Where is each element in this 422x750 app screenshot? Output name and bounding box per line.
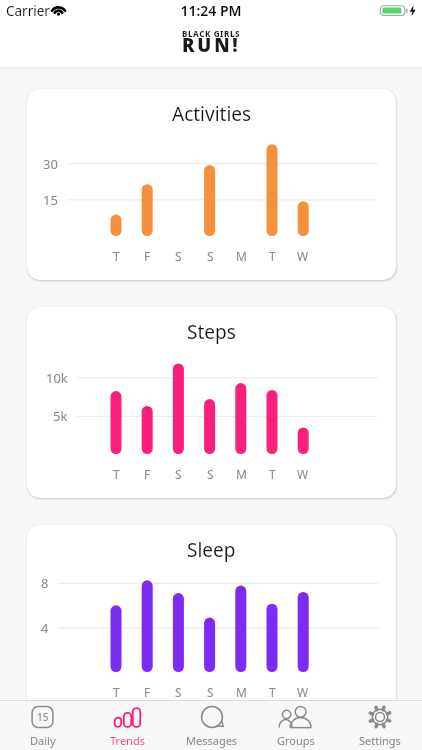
staticText: F [144,248,151,264]
staticText: S [207,684,214,700]
staticText: S [207,248,214,264]
staticText: 15 [37,710,49,724]
staticText: Daily [30,733,56,748]
staticText: 10k [46,369,68,387]
staticText: W [297,684,309,700]
staticText: Groups [277,733,315,748]
button[interactable]: 15 [0,700,85,750]
staticText: M [236,684,247,700]
staticText: S [207,466,214,482]
staticText: W [297,248,309,264]
staticText: Settings [359,733,401,748]
staticText: Carrier [6,2,50,20]
staticText: Steps [187,319,236,345]
button[interactable]: Groups [254,700,338,750]
staticText: Messages [186,733,238,748]
staticText: T [113,248,120,264]
staticText: T [269,248,276,264]
staticText: S [175,248,182,264]
staticText: 4 [41,619,49,637]
staticText: T [113,684,120,700]
staticText: BLACK GIRLS [182,28,241,39]
staticText: T [113,466,120,482]
button[interactable]: Settings [338,700,422,750]
staticText: Activities [172,101,252,127]
staticText: M [236,248,247,264]
button[interactable]: Messages [170,700,254,750]
staticText: 11:24 PM [0,1,422,20]
staticText: F [144,466,151,482]
staticText: Trends [110,733,145,748]
staticText: S [175,466,182,482]
staticText: RUN! [182,32,241,57]
staticText: 15 [43,191,58,209]
staticText: F [144,684,151,700]
staticText: W [297,466,309,482]
staticText: T [269,466,276,482]
staticText: 5k [53,407,68,425]
staticText: T [269,684,276,700]
staticText: 30 [43,155,58,173]
staticText: S [175,684,182,700]
staticText: M [236,466,247,482]
staticText: Sleep [187,537,236,563]
button[interactable]: Trends [85,700,170,750]
staticText: 8 [41,574,49,592]
